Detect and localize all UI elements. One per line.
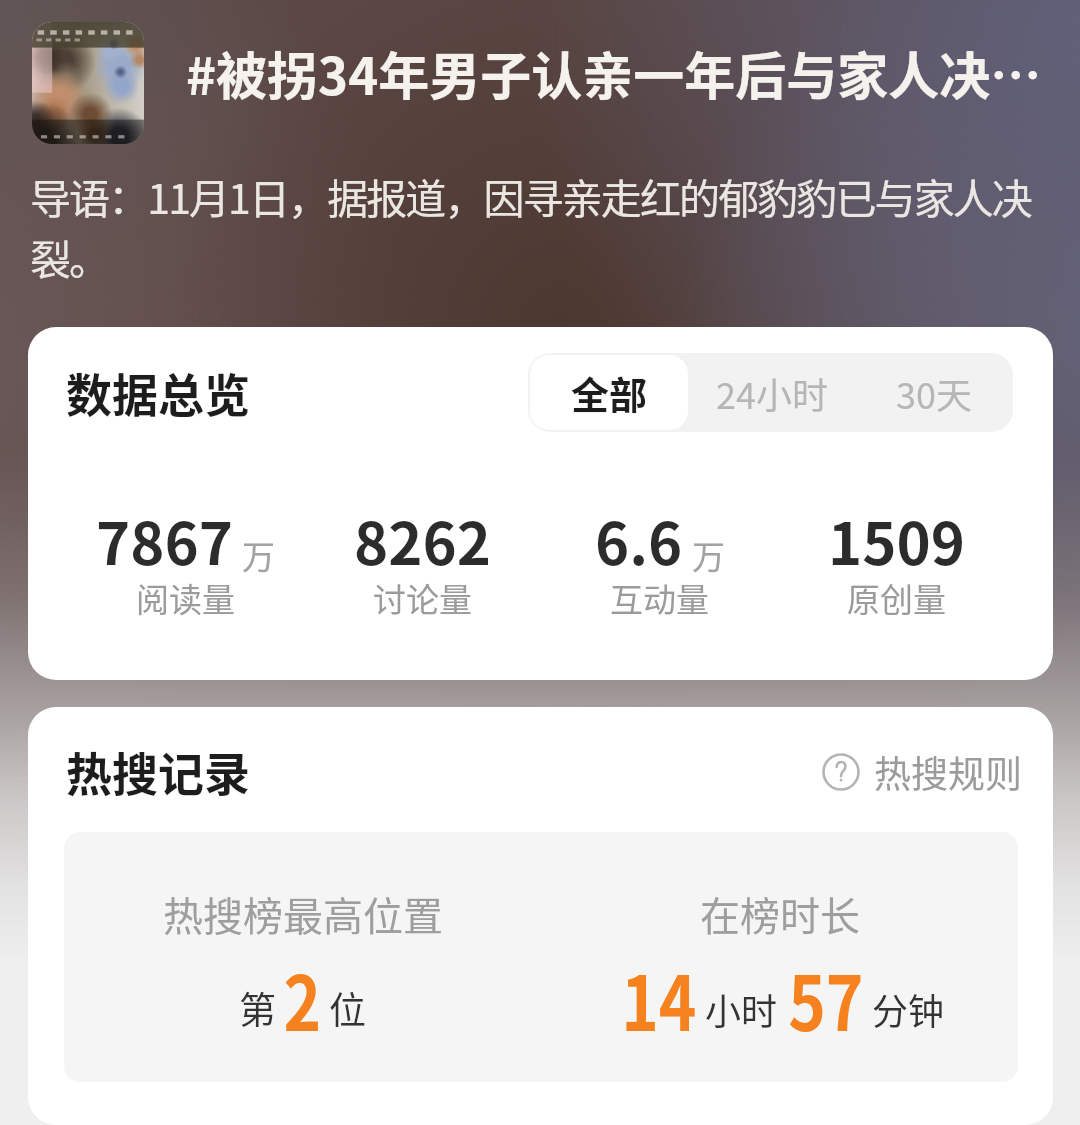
staticText: 24小时	[716, 367, 828, 419]
staticText: 热搜规则	[874, 745, 1022, 799]
staticText: 8262	[354, 498, 491, 582]
staticText: #被拐34年男子认亲一年后与家人决…	[186, 36, 1056, 110]
staticText: 阅读量	[136, 574, 235, 622]
staticText: 万	[242, 531, 275, 579]
staticText: 讨论量	[373, 574, 472, 622]
staticText: 热搜榜最高位置	[163, 885, 443, 943]
staticText: 在榜时长	[700, 885, 860, 943]
staticText: 分钟	[872, 983, 945, 1035]
button[interactable]: 热搜规则说明	[822, 745, 1022, 799]
staticText: 万	[692, 531, 725, 579]
button[interactable]: 30天	[854, 353, 1013, 432]
button[interactable]: 6.6	[541, 498, 778, 630]
staticText: 小时	[705, 983, 778, 1035]
button[interactable]: 7867	[66, 498, 304, 630]
staticText: 30天	[896, 367, 972, 419]
staticText: 57	[788, 943, 864, 1053]
staticText: 互动量	[610, 574, 709, 622]
staticText: 热搜记录	[66, 738, 250, 805]
staticText: 导语：11月1日，据报道，因寻亲走红的郁豹豹已与家人决裂。	[30, 166, 1068, 287]
button[interactable]: 1509	[778, 498, 1015, 630]
button[interactable]: 8262	[304, 498, 541, 630]
staticText: 2	[284, 943, 321, 1053]
button[interactable]: 话题配图	[32, 22, 144, 144]
button[interactable]: 24小时	[690, 353, 854, 432]
other: 热搜规则说明	[822, 753, 860, 791]
button[interactable]: #被拐34年男子认亲一年后与家人决…	[186, 46, 1056, 120]
staticText: 6.6	[595, 498, 683, 582]
staticText: 位	[329, 981, 366, 1035]
staticText: 数据总览	[66, 359, 250, 426]
button[interactable]: 全部	[530, 355, 688, 430]
staticText: 原创量	[847, 574, 946, 622]
staticText: 7867	[96, 498, 233, 582]
staticText: 1509	[828, 498, 965, 582]
staticText: 14	[621, 943, 697, 1053]
staticText: 第	[239, 981, 276, 1035]
staticText: 全部	[571, 365, 648, 420]
